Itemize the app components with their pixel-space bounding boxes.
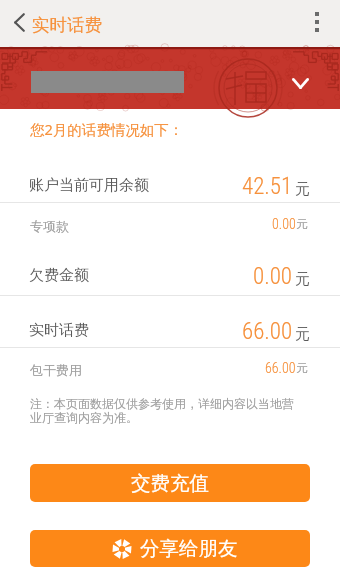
staticText: 专项款 xyxy=(30,218,69,234)
staticText: 元 xyxy=(296,217,308,231)
button[interactable]: 交费充值 xyxy=(30,464,310,502)
staticText: 分享给朋友 xyxy=(140,536,238,561)
staticText: 0.00 xyxy=(253,263,293,290)
staticText: 实时话费 xyxy=(29,321,89,340)
button[interactable]: 分享给朋友 xyxy=(30,530,310,567)
staticText: 您2月的话费情况如下： xyxy=(30,119,184,139)
staticText: 交费充值 xyxy=(131,471,209,496)
staticText: 注：本页面数据仅供参考使用，详细内容以当地营业厅查询内容为准。 xyxy=(30,396,302,426)
button[interactable]: More options xyxy=(302,0,334,44)
button[interactable]: Switch number xyxy=(286,69,314,97)
staticText: 66.00 xyxy=(265,360,296,376)
staticText: 66.00 xyxy=(242,318,293,345)
staticText: 元 xyxy=(295,325,310,344)
button[interactable]: Back xyxy=(4,0,34,44)
staticText: 欠费金额 xyxy=(29,266,89,285)
staticText: 包干费用 xyxy=(30,362,82,378)
staticText: 元 xyxy=(295,180,310,199)
staticText: 元 xyxy=(296,361,308,375)
staticText: 实时话费 xyxy=(32,14,102,36)
staticText: 42.51 xyxy=(242,173,293,200)
staticText: 账户当前可用余额 xyxy=(29,176,149,195)
staticText: 0.00 xyxy=(272,216,296,232)
staticText: 元 xyxy=(295,270,310,289)
